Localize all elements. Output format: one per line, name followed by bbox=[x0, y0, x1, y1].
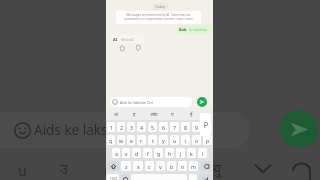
button[interactable]: q bbox=[107, 135, 115, 145]
staticText: यु bbox=[213, 159, 222, 178]
button[interactable]: Emoji bbox=[121, 174, 129, 180]
button[interactable]: x bbox=[133, 161, 143, 171]
staticText: g bbox=[157, 150, 161, 157]
staticText: 0 bbox=[206, 124, 209, 131]
staticText: 8 bbox=[184, 124, 187, 131]
button[interactable]: n bbox=[178, 161, 187, 171]
button[interactable]: 4 bbox=[137, 122, 146, 132]
button[interactable]: Aids bbox=[177, 25, 211, 34]
staticText: h bbox=[168, 150, 172, 157]
staticText: Messages are protected by AI. Some are n… bbox=[121, 13, 196, 21]
button[interactable]: r bbox=[137, 135, 146, 145]
button[interactable]: m bbox=[189, 161, 198, 171]
button[interactable]: इ bbox=[125, 108, 144, 120]
staticText: 5 bbox=[151, 124, 154, 131]
staticText: अंक bbox=[150, 111, 158, 118]
staticText: u bbox=[173, 137, 177, 144]
button[interactable]: a bbox=[112, 148, 120, 158]
button[interactable]: l bbox=[198, 148, 207, 158]
button[interactable] bbox=[0, 112, 250, 148]
button[interactable]: Dislike bbox=[133, 43, 143, 53]
staticText: Aids ke lakshan Ctrl bbox=[120, 100, 153, 105]
button[interactable]: Today bbox=[155, 4, 165, 9]
button[interactable]: h bbox=[165, 148, 174, 158]
button[interactable]: ए bbox=[163, 108, 182, 120]
button[interactable]: e bbox=[127, 135, 135, 145]
button[interactable]: 8 bbox=[181, 122, 190, 132]
other: Expand suggestions bbox=[255, 163, 271, 174]
button[interactable]: 6 bbox=[159, 122, 168, 132]
button[interactable]: अ bbox=[106, 108, 125, 120]
staticText: q bbox=[109, 137, 113, 144]
button[interactable]: t bbox=[148, 135, 157, 145]
button[interactable]: Send bbox=[280, 110, 318, 148]
button[interactable]: ई bbox=[182, 108, 201, 120]
staticText: r bbox=[140, 137, 143, 144]
button[interactable]: w bbox=[117, 135, 125, 145]
staticText: o bbox=[195, 137, 199, 144]
button[interactable]: AI bbox=[111, 35, 145, 43]
button[interactable]: 3 bbox=[127, 122, 135, 132]
staticText: m bbox=[191, 163, 196, 170]
button[interactable]: u bbox=[170, 135, 179, 145]
other: Return bbox=[292, 160, 312, 180]
button[interactable]: p bbox=[203, 135, 212, 145]
staticText: w bbox=[119, 137, 124, 144]
button[interactable]: 1 bbox=[107, 122, 115, 132]
button[interactable]: b bbox=[167, 161, 176, 171]
button[interactable]: d bbox=[132, 148, 141, 158]
staticText: l bbox=[202, 150, 204, 157]
staticText: 7 bbox=[173, 124, 176, 131]
button[interactable]: Shift bbox=[107, 161, 119, 171]
button[interactable]: 9 bbox=[192, 122, 201, 132]
staticText: b bbox=[170, 163, 174, 170]
staticText: k bbox=[190, 150, 193, 157]
button[interactable]: Like bbox=[117, 43, 127, 53]
staticText: अ bbox=[114, 111, 118, 118]
button[interactable]: Enter bbox=[199, 174, 212, 180]
button[interactable]: j bbox=[176, 148, 185, 158]
button[interactable]: o bbox=[192, 135, 201, 145]
staticText: AI bbox=[113, 37, 118, 42]
button[interactable]: z bbox=[121, 161, 131, 171]
staticText: y bbox=[162, 137, 165, 144]
button[interactable]: v bbox=[156, 161, 165, 171]
button[interactable]: c bbox=[145, 161, 154, 171]
staticText: z bbox=[125, 163, 128, 170]
button[interactable]: ?123 bbox=[107, 174, 119, 180]
staticText: 9 bbox=[195, 124, 198, 131]
button[interactable]: 2 bbox=[117, 122, 125, 132]
staticText: i bbox=[185, 137, 187, 144]
button[interactable]: 7 bbox=[170, 122, 179, 132]
button[interactable]: . bbox=[189, 174, 197, 180]
staticText: d bbox=[135, 150, 139, 157]
staticText: u bbox=[104, 161, 113, 180]
button[interactable]: y bbox=[159, 135, 168, 145]
button[interactable]: i bbox=[181, 135, 190, 145]
staticText: x bbox=[137, 163, 140, 170]
button[interactable]: f bbox=[143, 148, 152, 158]
staticText: c bbox=[148, 163, 151, 170]
staticText: j bbox=[180, 150, 182, 157]
staticText: f bbox=[147, 150, 149, 157]
button[interactable]: s bbox=[122, 148, 130, 158]
staticText: ?123 bbox=[110, 177, 117, 180]
staticText: p bbox=[204, 119, 208, 128]
button[interactable]: Aids ke lakshan Ctrl bbox=[110, 97, 192, 107]
staticText: 6 bbox=[162, 124, 165, 131]
button[interactable]: 5 bbox=[148, 122, 157, 132]
staticText: u bbox=[18, 161, 27, 180]
button[interactable]: g bbox=[154, 148, 163, 158]
button[interactable]: k bbox=[187, 148, 196, 158]
staticText: 4 bbox=[140, 124, 143, 131]
button[interactable]: Messages are protected by AI. Some are n… bbox=[116, 11, 201, 24]
button[interactable]: अंक bbox=[144, 108, 163, 120]
button[interactable]: Send bbox=[197, 97, 207, 107]
button[interactable]: More suggestions bbox=[201, 108, 213, 120]
staticText: 1 bbox=[110, 124, 113, 131]
button[interactable]: Backspace bbox=[200, 161, 212, 171]
button[interactable]: 0 bbox=[203, 122, 212, 132]
staticText: Today bbox=[155, 4, 165, 9]
